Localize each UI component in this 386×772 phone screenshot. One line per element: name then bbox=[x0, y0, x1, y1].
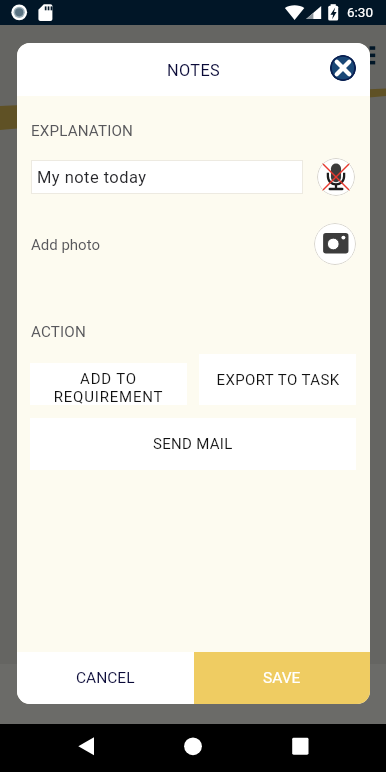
staticText: Add photo bbox=[31, 236, 100, 254]
staticText: CANCEL bbox=[76, 669, 135, 687]
staticText: EXPORT TO TASK bbox=[216, 371, 340, 389]
button[interactable]: Voice input disabled bbox=[317, 158, 355, 196]
staticText: SAVE bbox=[263, 669, 301, 687]
staticText: 6:30 bbox=[347, 4, 374, 20]
staticText: EXPLANATION bbox=[31, 122, 134, 140]
button[interactable]: CANCEL bbox=[17, 652, 194, 704]
button[interactable]: ADD TO REQUIREMENT bbox=[30, 363, 187, 405]
staticText: SEND MAIL bbox=[153, 435, 233, 453]
staticText: ADD TO REQUIREMENT bbox=[30, 370, 187, 405]
button[interactable]: My note today bbox=[31, 160, 303, 194]
button[interactable]: SAVE bbox=[194, 652, 370, 704]
staticText: My note today bbox=[37, 168, 147, 187]
button[interactable]: Close bbox=[330, 55, 356, 81]
staticText: NOTES bbox=[167, 61, 221, 80]
button[interactable]: EXPORT TO TASK bbox=[199, 354, 356, 405]
button[interactable]: Take photo bbox=[314, 223, 356, 265]
staticText: ACTION bbox=[31, 323, 86, 341]
button[interactable]: SEND MAIL bbox=[30, 418, 356, 470]
